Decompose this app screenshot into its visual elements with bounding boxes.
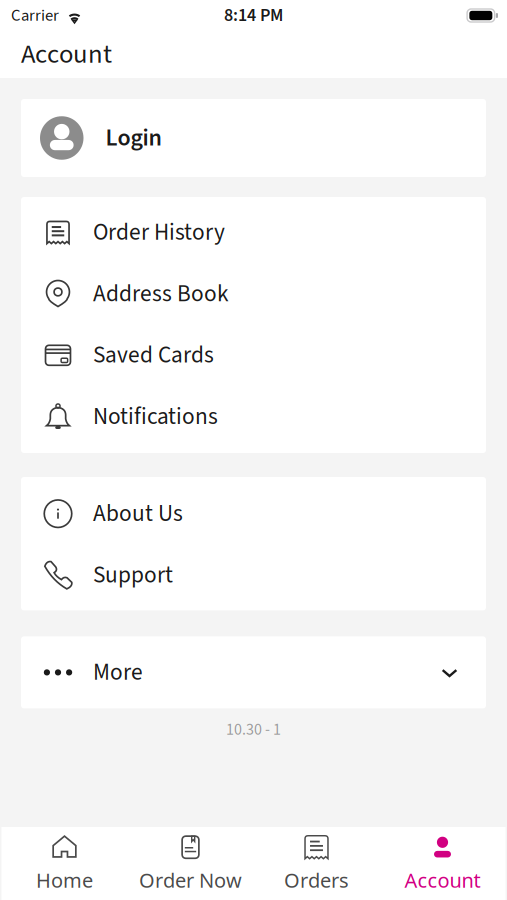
staticText: About Us bbox=[93, 497, 183, 530]
staticText: Login bbox=[105, 121, 161, 155]
button[interactable]: Order Now bbox=[127, 831, 253, 895]
staticText: Address Book bbox=[93, 277, 229, 310]
button[interactable]: Saved Cards bbox=[21, 325, 486, 386]
staticText: Carrier bbox=[11, 4, 59, 27]
staticText: Account bbox=[404, 867, 480, 893]
staticText: More bbox=[93, 656, 143, 689]
staticText: Notifications bbox=[93, 400, 218, 433]
button[interactable]: About Us bbox=[21, 483, 486, 544]
staticText: Account bbox=[21, 35, 112, 73]
staticText: Order History bbox=[93, 216, 225, 249]
staticText: 10.30 - 1 bbox=[226, 718, 281, 741]
staticText: Order Now bbox=[139, 867, 242, 893]
button[interactable]: Account bbox=[379, 831, 505, 895]
staticText: Saved Cards bbox=[93, 339, 214, 372]
button[interactable]: More bbox=[21, 636, 486, 708]
staticText: Support bbox=[93, 558, 173, 592]
staticText: 8:14 PM bbox=[224, 3, 283, 28]
button[interactable]: Orders bbox=[253, 831, 379, 895]
button[interactable]: Login bbox=[21, 99, 486, 177]
staticText: Orders bbox=[284, 867, 349, 893]
staticText: Home bbox=[36, 867, 93, 893]
button[interactable]: Home bbox=[1, 831, 127, 895]
button[interactable]: Address Book bbox=[21, 263, 486, 325]
button[interactable]: Order History bbox=[21, 202, 486, 263]
button[interactable]: Support bbox=[21, 544, 486, 606]
button[interactable]: Notifications bbox=[21, 386, 486, 447]
